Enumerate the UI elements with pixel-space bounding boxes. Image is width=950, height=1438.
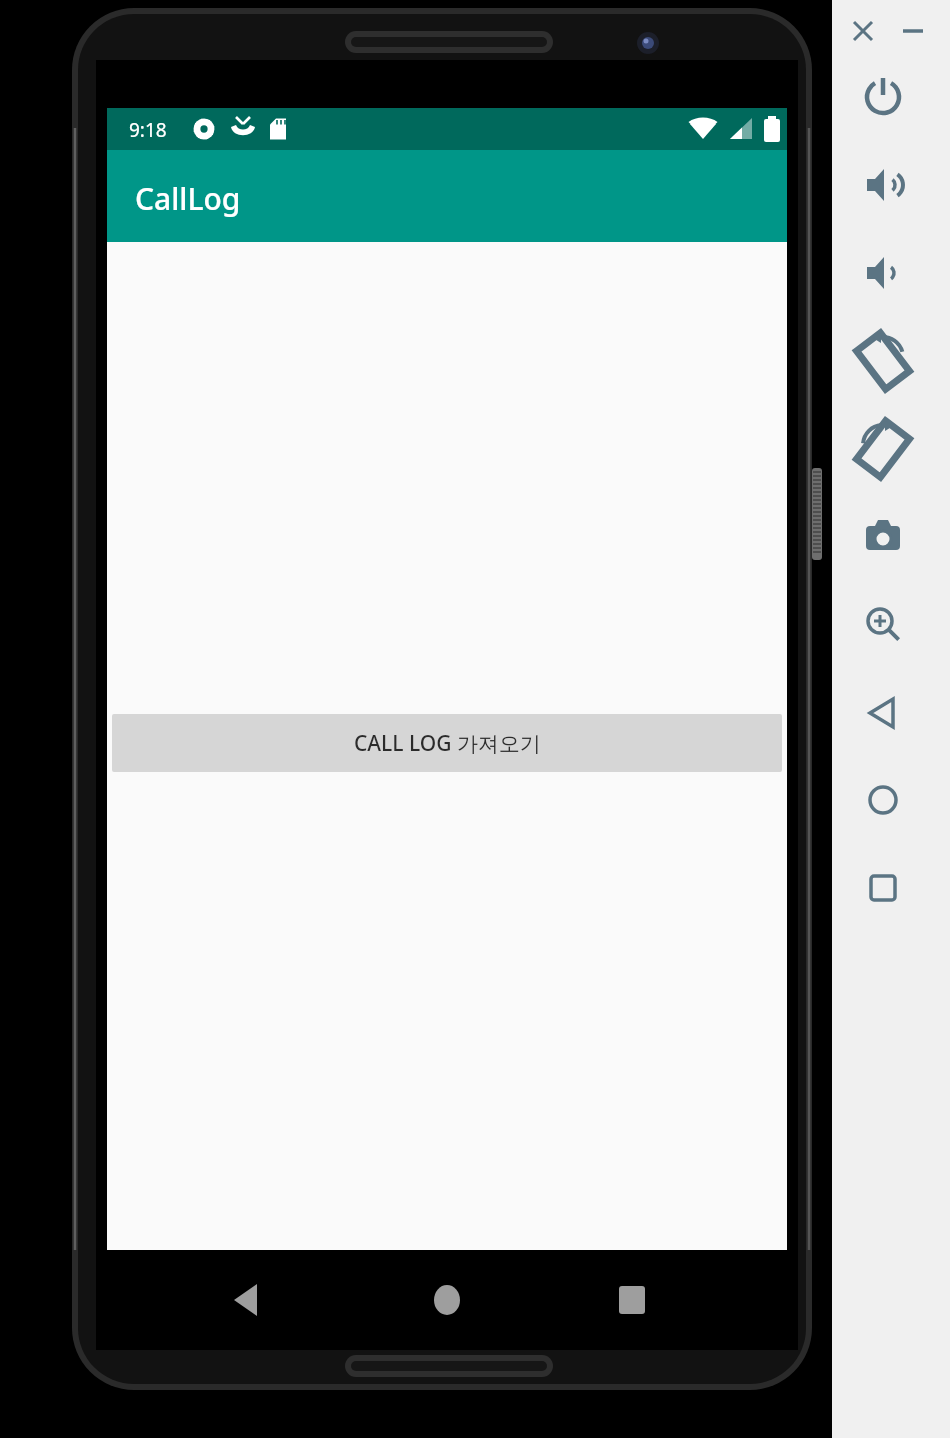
button[interactable]: Home xyxy=(858,775,908,825)
button[interactable]: Take screenshot xyxy=(858,511,908,561)
button[interactable]: Back xyxy=(217,1270,277,1330)
button[interactable]: CALL LOG 가져오기 xyxy=(112,714,782,772)
staticText: CallLog xyxy=(135,178,241,219)
button[interactable]: Zoom xyxy=(858,599,908,649)
button[interactable]: Rotate left xyxy=(858,336,908,386)
button[interactable]: Minimize xyxy=(893,11,933,51)
button[interactable]: Overview xyxy=(858,863,908,913)
button[interactable]: Rotate right xyxy=(858,424,908,474)
button[interactable]: Back xyxy=(858,688,908,738)
button[interactable]: Close xyxy=(843,11,883,51)
button[interactable]: Home xyxy=(417,1270,477,1330)
staticText: 9:18 xyxy=(129,117,167,143)
button[interactable]: Volume up xyxy=(858,160,908,210)
button[interactable]: Recent apps xyxy=(602,1270,662,1330)
staticText: CALL LOG 가져오기 xyxy=(354,729,541,758)
button[interactable]: Power xyxy=(858,72,908,122)
button[interactable]: Volume down xyxy=(858,248,908,298)
